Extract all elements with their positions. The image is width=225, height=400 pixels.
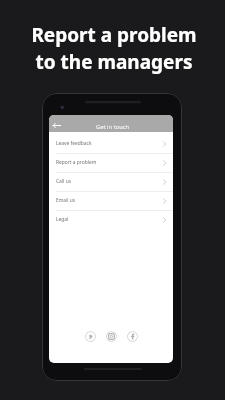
staticText: Get in touch	[96, 123, 130, 131]
staticText: Legal	[56, 216, 69, 223]
staticText: Leave feedback	[56, 140, 92, 147]
button[interactable]: Email us	[49, 191, 173, 210]
staticText: Email us	[56, 197, 76, 204]
staticText: Report a problem	[56, 159, 97, 166]
button[interactable]: Twitter	[85, 331, 96, 342]
button[interactable]: Leave feedback	[49, 134, 173, 153]
button[interactable]: Legal	[49, 210, 173, 229]
staticText: Report a problem to the managers	[31, 22, 197, 75]
button[interactable]: Instagram	[106, 331, 117, 342]
button[interactable]: Facebook	[127, 331, 138, 342]
button[interactable]: Back	[52, 121, 61, 130]
button[interactable]: Call us	[49, 172, 173, 191]
button[interactable]: Report a problem	[49, 153, 173, 172]
staticText: Call us	[56, 178, 71, 185]
